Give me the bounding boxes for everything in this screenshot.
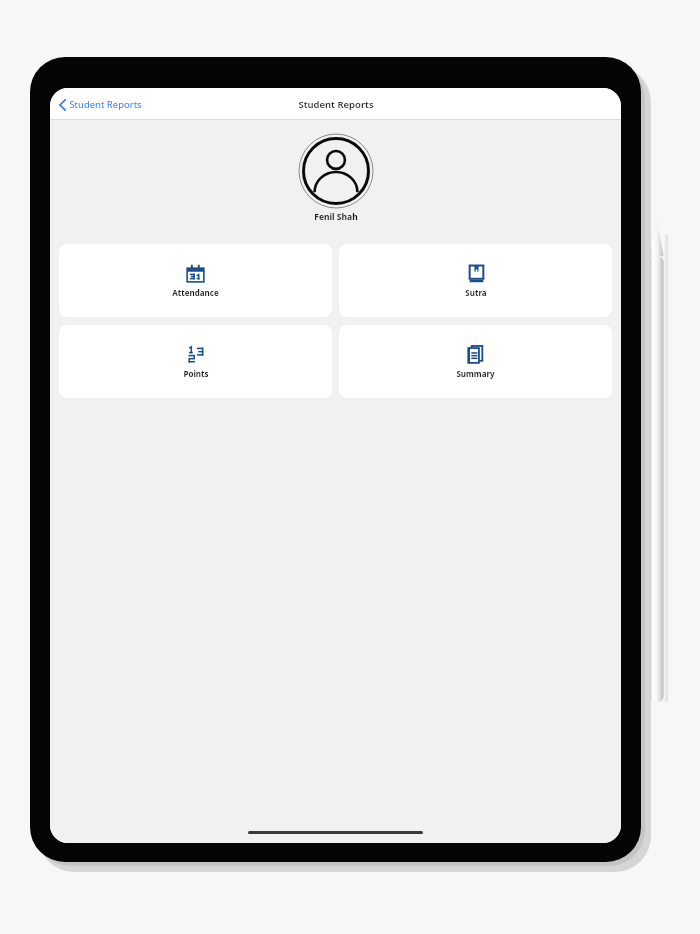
staticText: Student Reports: [69, 98, 142, 111]
button[interactable]: Points: [59, 325, 332, 398]
button[interactable]: Sutra: [339, 244, 612, 317]
button[interactable]: Student Reports: [56, 95, 145, 114]
other: Student avatar: [298, 133, 374, 209]
staticText: Attendance: [172, 287, 219, 298]
button[interactable]: Summary: [339, 325, 612, 398]
staticText: Summary: [456, 368, 495, 379]
staticText: Student Reports: [298, 98, 374, 111]
button[interactable]: Attendance: [59, 244, 332, 317]
staticText: Sutra: [465, 287, 487, 298]
staticText: Points: [183, 368, 209, 379]
staticText: Fenil Shah: [314, 211, 358, 223]
